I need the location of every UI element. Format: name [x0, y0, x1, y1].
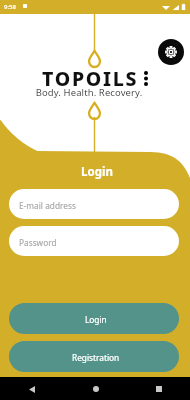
staticText: Body. Health. Recovery.: [0, 86, 184, 99]
staticText: 9:58: [4, 3, 16, 11]
button[interactable]: Home: [85, 378, 107, 400]
button[interactable]: Password: [9, 226, 179, 256]
button[interactable]: Registration: [9, 341, 179, 372]
staticText: Login: [85, 314, 107, 325]
staticText: E-mail address: [19, 200, 76, 211]
staticText: Registration: [72, 352, 120, 363]
button[interactable]: E-mail address: [9, 189, 179, 219]
button[interactable]: Settings: [158, 39, 184, 65]
button[interactable]: Login: [9, 303, 179, 334]
staticText: TOPOILS: [42, 65, 139, 92]
button[interactable]: Recent apps: [148, 378, 170, 400]
button[interactable]: Back: [21, 378, 43, 400]
staticText: Login: [2, 164, 190, 180]
staticText: Password: [19, 237, 57, 248]
